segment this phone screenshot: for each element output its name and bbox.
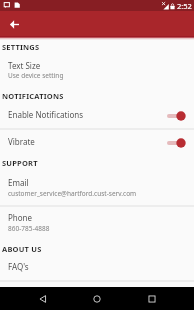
button[interactable]: Toggle — [0, 110, 194, 122]
staticText: customer_service@hartford.cust-serv.com — [8, 189, 137, 198]
staticText: ABOUT US — [2, 244, 42, 254]
staticText: SUPPORT — [2, 158, 38, 168]
staticText: Text Size — [8, 60, 41, 71]
button[interactable]: Back — [31, 287, 55, 310]
staticText: Enable Notifications — [8, 109, 84, 120]
staticText: FAQ's — [8, 261, 29, 272]
button[interactable]: Toggle — [0, 137, 194, 149]
staticText: SETTINGS — [2, 42, 40, 52]
staticText: Vibrate — [8, 136, 35, 147]
button[interactable]: Back — [1, 11, 27, 37]
staticText: Email — [8, 177, 29, 188]
staticText: NOTIFICATIONS — [2, 91, 64, 101]
staticText: Use device setting — [8, 71, 64, 80]
staticText: Phone — [8, 212, 33, 223]
button[interactable]: Recents — [140, 287, 164, 310]
staticText: 860-785-4888 — [8, 224, 50, 233]
staticText: 2:52 — [177, 1, 192, 11]
button[interactable]: Home — [85, 287, 109, 310]
